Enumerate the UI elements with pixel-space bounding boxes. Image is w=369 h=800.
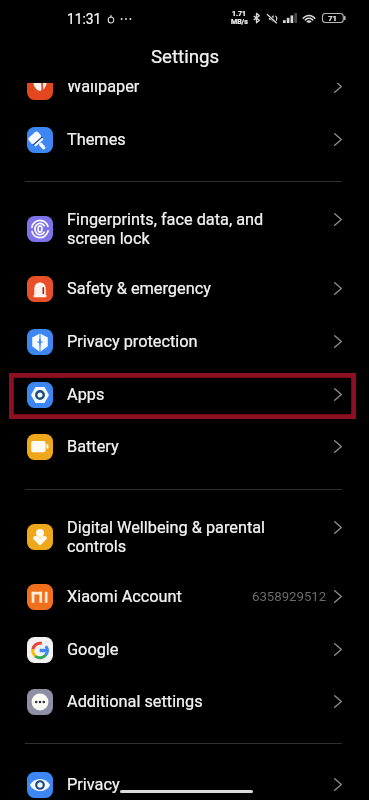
button[interactable]: Fingerprints, face data, and bbox=[0, 193, 369, 245]
staticText: Google bbox=[67, 640, 119, 659]
staticText: MB/s bbox=[231, 18, 248, 26]
button[interactable]: Wallpaper bbox=[0, 83, 369, 112]
button[interactable]: Apps bbox=[0, 368, 369, 420]
button[interactable]: Privacy bbox=[0, 758, 369, 800]
staticText: Apps bbox=[67, 385, 105, 404]
staticText: Fingerprints, face data, and bbox=[67, 210, 264, 229]
button[interactable]: Safety & emergency bbox=[0, 262, 369, 314]
button[interactable]: Battery bbox=[0, 420, 369, 472]
button[interactable]: Themes bbox=[0, 113, 369, 165]
staticText: Additional settings bbox=[67, 692, 203, 711]
button[interactable]: Additional settings bbox=[0, 675, 369, 727]
staticText: Digital Wellbeing & parental bbox=[67, 518, 266, 537]
staticText: 11:31 bbox=[67, 11, 102, 27]
button[interactable]: Google bbox=[0, 623, 369, 675]
staticText: Privacy protection bbox=[67, 332, 198, 351]
staticText: Battery bbox=[67, 437, 119, 456]
staticText: Privacy bbox=[67, 775, 120, 794]
staticText: Safety & emergency bbox=[67, 279, 211, 298]
staticText: controls bbox=[67, 537, 127, 556]
staticText: 6358929512 bbox=[252, 589, 327, 604]
staticText: Wallpaper bbox=[67, 83, 140, 96]
staticText: 1.71 bbox=[232, 10, 247, 18]
staticText: Xiaomi Account bbox=[67, 587, 182, 606]
staticText: Settings bbox=[151, 46, 220, 68]
staticText: Themes bbox=[67, 130, 126, 149]
staticText: screen lock bbox=[67, 229, 150, 248]
button[interactable]: Privacy protection bbox=[0, 315, 369, 367]
button[interactable]: Xiaomi Account bbox=[0, 570, 369, 622]
staticText: 71 bbox=[328, 14, 338, 23]
button[interactable]: Digital Wellbeing & parental bbox=[0, 501, 369, 553]
